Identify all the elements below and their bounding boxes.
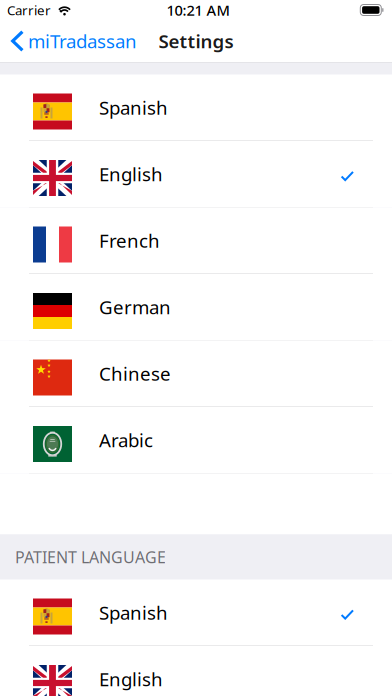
button[interactable]: miTradassan (0, 20, 145, 62)
button[interactable]: English (0, 141, 392, 207)
staticText: Settings (158, 29, 233, 53)
staticText: English (99, 162, 163, 186)
button[interactable]: German (0, 274, 392, 340)
staticText: English (99, 667, 163, 691)
staticText: PATIENT LANGUAGE (15, 546, 166, 568)
staticText: French (99, 228, 160, 253)
staticText: Chinese (99, 361, 171, 386)
button[interactable]: Arabic (0, 407, 392, 473)
staticText: Arabic (99, 428, 153, 452)
button[interactable]: Spanish (0, 579, 392, 646)
button[interactable]: Chinese (0, 340, 392, 407)
staticText: Spanish (99, 95, 168, 120)
staticText: German (99, 295, 171, 319)
staticText: 10:21 AM (166, 0, 229, 20)
button[interactable]: Spanish (0, 74, 392, 141)
button[interactable]: French (0, 207, 392, 274)
staticText: Carrier (7, 1, 51, 19)
button[interactable]: English (0, 646, 392, 696)
staticText: miTradassan (28, 29, 137, 53)
staticText: Spanish (99, 600, 168, 625)
